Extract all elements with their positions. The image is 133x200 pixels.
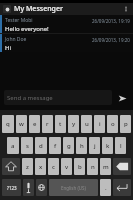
staticText: u xyxy=(85,120,89,128)
staticText: a xyxy=(11,142,15,150)
button[interactable]: e xyxy=(29,115,40,133)
button[interactable]: t xyxy=(55,115,66,133)
staticText: c xyxy=(52,163,55,171)
staticText: q xyxy=(6,120,10,128)
staticText: f xyxy=(54,142,57,150)
button[interactable]: d xyxy=(35,137,47,154)
button[interactable]: k xyxy=(102,137,113,154)
button[interactable]: Space xyxy=(49,179,98,196)
button[interactable]: x xyxy=(35,158,46,175)
staticText: . xyxy=(105,184,107,192)
staticText: d xyxy=(39,142,43,150)
button[interactable]: u xyxy=(81,115,92,133)
staticText: r xyxy=(46,120,49,128)
button[interactable]: n xyxy=(87,158,98,175)
staticText: v xyxy=(65,163,69,171)
button[interactable]: App icon xyxy=(3,5,11,13)
button[interactable]: b xyxy=(74,158,85,175)
staticText: m xyxy=(103,163,109,171)
staticText: p xyxy=(124,120,128,128)
button[interactable]: m xyxy=(100,158,111,175)
button[interactable]: Backspace xyxy=(113,158,131,175)
staticText: x xyxy=(39,163,43,171)
button[interactable]: Send xyxy=(115,91,129,105)
button[interactable]: l xyxy=(115,137,126,154)
button[interactable]: More options xyxy=(122,3,130,15)
staticText: s xyxy=(26,142,29,150)
staticText: g xyxy=(67,142,71,150)
button[interactable]: q xyxy=(2,115,14,133)
button[interactable]: . xyxy=(100,179,111,196)
staticText: o xyxy=(111,120,115,128)
staticText: z xyxy=(26,163,29,171)
button[interactable]: p xyxy=(120,115,131,133)
button[interactable]: o xyxy=(107,115,118,133)
staticText: Hello everyone! xyxy=(5,25,49,33)
staticText: Tester Mobi xyxy=(5,17,33,24)
button[interactable]: c xyxy=(48,158,59,175)
staticText: n xyxy=(91,163,95,171)
staticText: John Doe xyxy=(5,36,27,43)
button[interactable]: John Doe xyxy=(0,34,133,52)
staticText: l xyxy=(120,142,122,150)
staticText: i xyxy=(99,120,101,128)
button[interactable]: f xyxy=(49,137,61,154)
button[interactable]: z xyxy=(22,158,33,175)
staticText: e xyxy=(33,120,37,128)
staticText: Hi xyxy=(5,44,11,52)
button[interactable]: v xyxy=(61,158,72,175)
button[interactable]: Send a message xyxy=(4,90,112,105)
button[interactable]: j xyxy=(89,137,100,154)
staticText: b xyxy=(78,163,82,171)
button[interactable]: a xyxy=(7,137,19,154)
button[interactable]: s xyxy=(21,137,33,154)
button[interactable]: Voice input xyxy=(23,179,34,196)
button[interactable]: r xyxy=(42,115,53,133)
staticText: j xyxy=(94,142,96,150)
staticText: My Messenger xyxy=(14,4,63,14)
button[interactable]: y xyxy=(68,115,79,133)
button[interactable]: w xyxy=(16,115,27,133)
button[interactable]: Shift xyxy=(2,158,20,175)
staticText: Send a message xyxy=(7,94,53,102)
button[interactable]: Tester Mobi xyxy=(0,15,133,33)
staticText: 26/09/2013, 19:19 xyxy=(92,18,130,24)
button[interactable]: i xyxy=(94,115,105,133)
staticText: w xyxy=(19,120,24,128)
staticText: t xyxy=(59,120,62,128)
staticText: k xyxy=(106,142,110,150)
button[interactable]: Change language xyxy=(36,179,47,196)
staticText: y xyxy=(72,120,76,128)
staticText: 26/09/2013, 19:20 xyxy=(92,37,130,43)
staticText: ?123 xyxy=(7,185,17,191)
button[interactable]: h xyxy=(76,137,87,154)
button[interactable]: ?123 xyxy=(2,179,21,196)
staticText: English (US) xyxy=(61,185,86,191)
button[interactable]: Enter xyxy=(113,179,131,196)
button[interactable]: g xyxy=(63,137,74,154)
staticText: h xyxy=(80,142,84,150)
